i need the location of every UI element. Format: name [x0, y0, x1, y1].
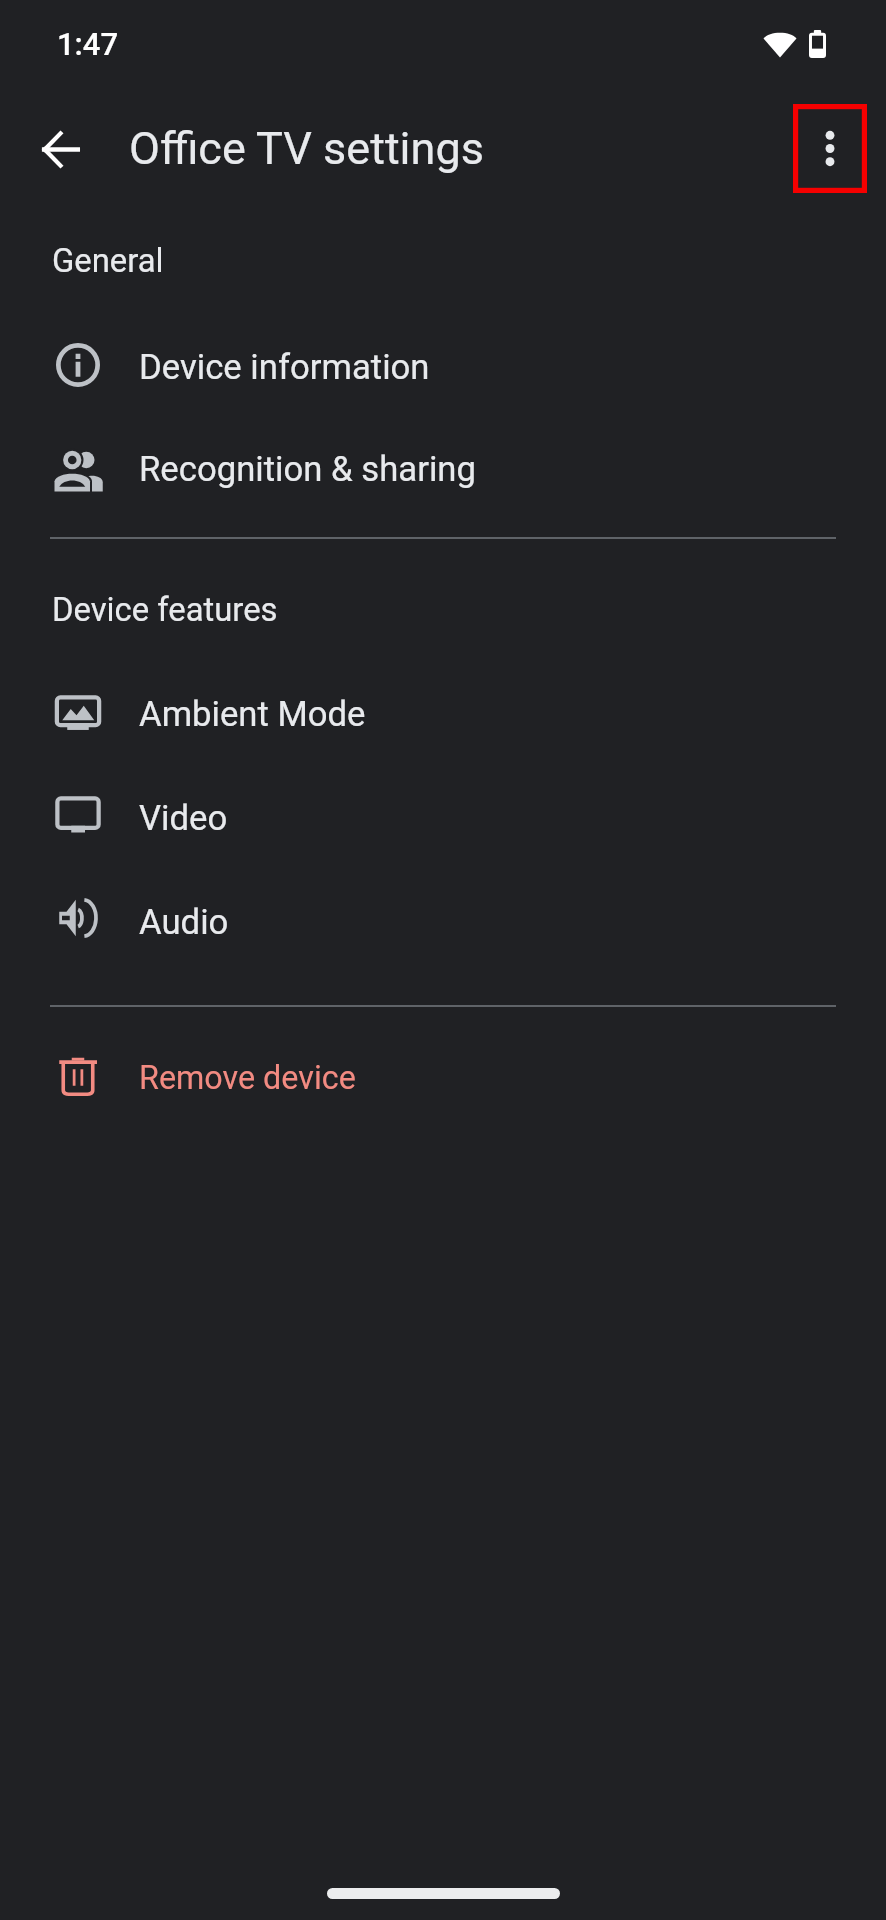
button[interactable]: Back [24, 113, 96, 185]
button[interactable]: Device information [0, 316, 886, 419]
staticText: Remove device [139, 1059, 356, 1097]
staticText: General [52, 242, 164, 280]
button[interactable]: Audio [0, 871, 886, 974]
staticText: Recognition & sharing [139, 449, 476, 490]
button[interactable]: Remove device [0, 1026, 886, 1129]
staticText: Office TV settings [129, 122, 484, 175]
staticText: Ambient Mode [139, 694, 366, 735]
staticText: Device information [139, 347, 430, 388]
staticText: Device features [52, 591, 278, 629]
staticText: 1:47 [57, 26, 119, 62]
staticText: Audio [139, 902, 229, 943]
button[interactable]: More options [793, 104, 867, 193]
staticText: Video [139, 798, 228, 839]
button[interactable]: Video [0, 767, 886, 870]
button[interactable]: Ambient Mode [0, 663, 886, 766]
button[interactable]: Recognition & sharing [0, 418, 886, 521]
